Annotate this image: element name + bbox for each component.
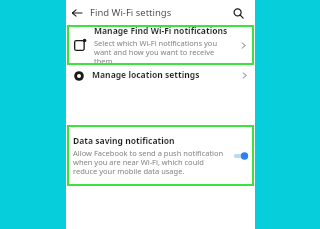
button[interactable]: Data saving notification toggle [232,149,250,163]
button[interactable]: Search [227,2,249,24]
button[interactable]: Manage location settings [66,65,255,85]
staticText: Allow Facebook to send a push notificati… [73,148,228,177]
staticText: Select which Wi-Fi notifications you wan… [94,38,233,65]
button[interactable]: Data saving notification [67,125,254,186]
staticText: Manage Find Wi-Fi notifications [94,25,228,37]
staticText: Data saving notification [73,135,175,147]
button[interactable]: Back [66,2,88,24]
staticText: Manage location settings [92,69,200,81]
button[interactable]: Manage Find Wi-Fi notifications [67,25,254,65]
staticText: Find Wi-Fi settings [90,6,172,19]
